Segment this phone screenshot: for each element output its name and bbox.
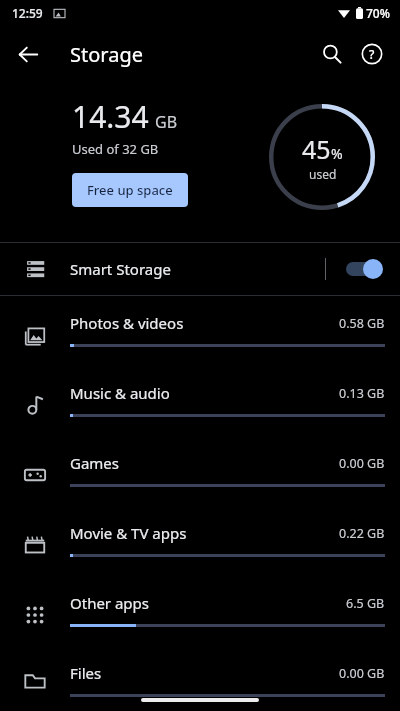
button[interactable]: Files [0,650,400,711]
button[interactable]: Smart Storage [0,243,400,295]
button[interactable]: Back [8,34,48,74]
button[interactable]: Smart Storage toggle [346,258,384,280]
staticText: 0.58 GB [339,315,385,332]
button[interactable]: Help [352,34,392,74]
staticText: 0.00 GB [339,455,385,472]
staticText: Other apps [70,593,150,613]
staticText: GB [155,111,178,133]
staticText: 45 [302,132,331,166]
staticText: Photos & videos [70,313,184,333]
staticText: Music & audio [70,383,170,403]
button[interactable]: Other apps [0,580,400,650]
button[interactable]: Games [0,440,400,510]
staticText: Used of 32 GB [72,140,159,158]
button[interactable]: Free up space [72,173,188,207]
staticText: 0.00 GB [339,665,385,682]
staticText: 70% [366,5,390,21]
staticText: Games [70,453,120,473]
button[interactable]: Photos & videos [0,300,400,370]
staticText: Movie & TV apps [70,523,187,543]
staticText: 6.5 GB [346,595,385,612]
button[interactable]: Search [312,34,352,74]
staticText: 14.34 [72,96,149,137]
staticText: % [331,144,343,163]
staticText: 0.22 GB [339,525,385,542]
staticText: Storage [70,41,143,68]
staticText: 0.13 GB [339,385,385,402]
staticText: 12:59 [12,5,43,21]
button[interactable]: Movie & TV apps [0,510,400,580]
staticText: Free up space [87,181,173,199]
staticText: Smart Storage [70,259,325,279]
staticText: Files [70,663,102,683]
staticText: ? [369,46,375,62]
staticText: used [309,166,337,182]
button[interactable]: Music & audio [0,370,400,440]
